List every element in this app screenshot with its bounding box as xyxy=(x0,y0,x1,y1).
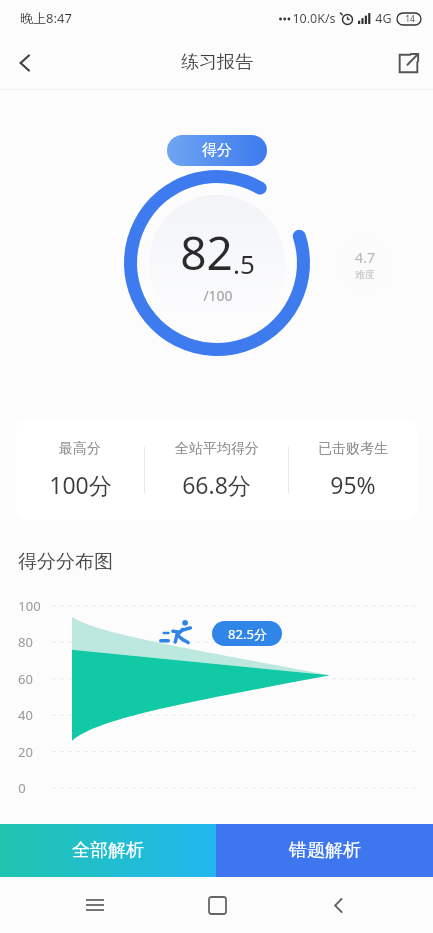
staticText: 10.0K/s xyxy=(292,10,336,27)
staticText: 82.5分 xyxy=(228,625,267,643)
staticText: 66.8分 xyxy=(182,469,251,500)
staticText: 100 xyxy=(18,597,41,615)
staticText: 练习报告 xyxy=(181,51,253,74)
button[interactable]: 错题解析 xyxy=(216,824,433,877)
staticText: 14 xyxy=(405,13,415,25)
button[interactable]: Recent apps xyxy=(68,878,122,932)
staticText: 0 xyxy=(18,779,26,797)
staticText: 4.7 xyxy=(355,248,375,267)
button[interactable]: 得分 xyxy=(167,135,267,166)
staticText: 晚上8:47 xyxy=(20,9,72,27)
button[interactable]: 全部解析 xyxy=(0,824,216,877)
staticText: 4G xyxy=(375,10,392,27)
staticText: 20 xyxy=(18,743,33,761)
staticText: 82 xyxy=(180,221,233,284)
staticText: 100分 xyxy=(49,469,112,500)
button[interactable]: 82.5分 xyxy=(212,621,282,646)
button[interactable]: Back xyxy=(0,38,50,88)
button[interactable]: Home xyxy=(190,878,244,932)
staticText: 全站平均得分 xyxy=(175,440,259,458)
staticText: 40 xyxy=(18,706,33,724)
button[interactable]: Back xyxy=(311,878,365,932)
staticText: 难度 xyxy=(355,268,375,281)
staticText: 得分分布图 xyxy=(18,550,113,574)
button[interactable]: 最高分 xyxy=(16,420,417,520)
staticText: 已击败考生 xyxy=(318,440,388,458)
staticText: 全部解析 xyxy=(72,839,144,862)
staticText: 95% xyxy=(330,469,376,500)
staticText: 得分 xyxy=(202,141,232,160)
staticText: /100 xyxy=(203,286,233,305)
staticText: 60 xyxy=(18,670,33,688)
button[interactable]: Share xyxy=(383,38,433,88)
staticText: .5 xyxy=(233,246,255,281)
staticText: 80 xyxy=(18,633,33,651)
staticText: 错题解析 xyxy=(289,839,361,862)
staticText: 最高分 xyxy=(59,440,101,458)
